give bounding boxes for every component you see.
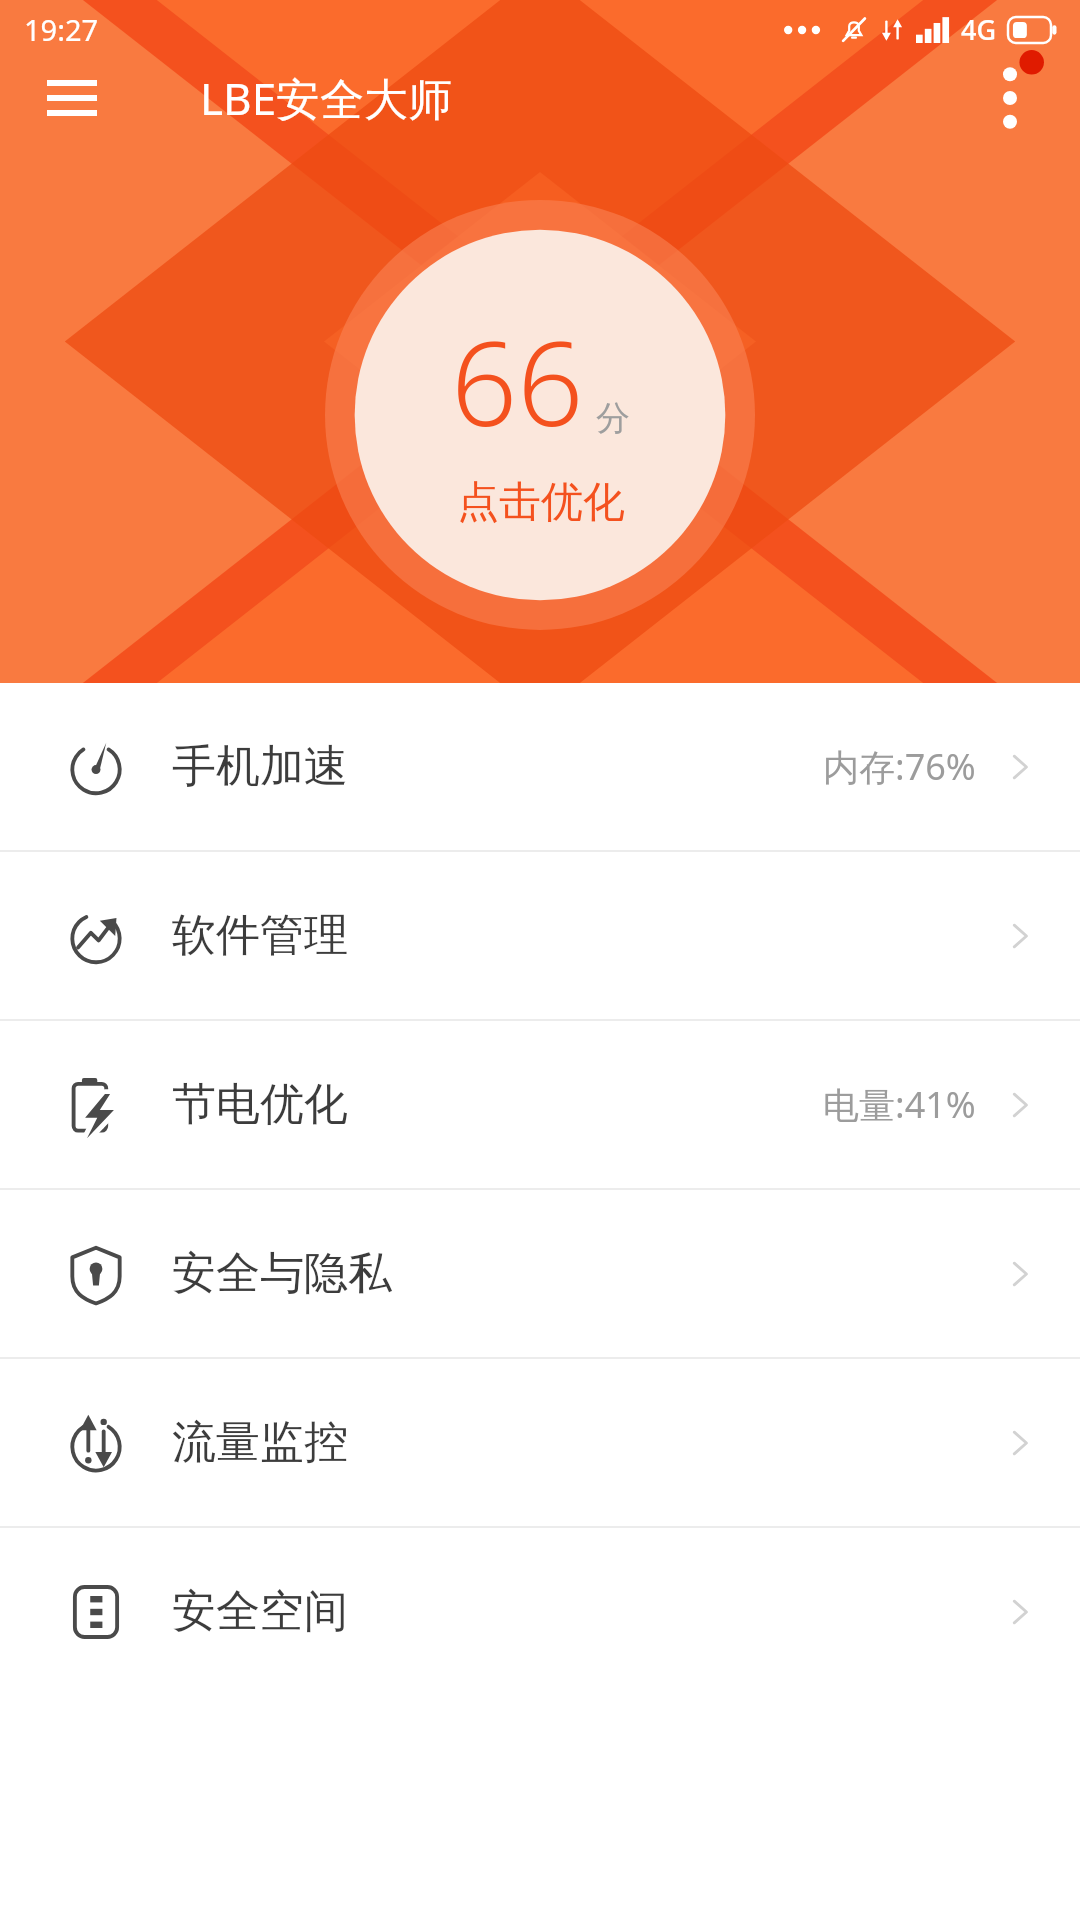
button[interactable]: 点击优化 66分: [325, 200, 755, 630]
staticText: 安全空间: [172, 1584, 348, 1639]
staticText: 安全与隐私: [172, 1246, 392, 1301]
staticText: 19:27: [24, 10, 99, 49]
staticText: 电量:41%: [823, 1080, 976, 1129]
button[interactable]: More options: [964, 52, 1056, 144]
staticText: 软件管理: [172, 908, 348, 963]
staticText: 流量监控: [172, 1415, 348, 1470]
button[interactable]: Menu: [30, 56, 114, 140]
button[interactable]: 手机加速: [0, 683, 1080, 850]
staticText: 66: [451, 302, 584, 460]
staticText: 内存:76%: [823, 742, 976, 791]
staticText: 分: [596, 397, 630, 440]
staticText: 节电优化: [172, 1077, 348, 1132]
button[interactable]: 流量监控: [0, 1359, 1080, 1526]
button[interactable]: 安全空间: [0, 1528, 1080, 1695]
staticText: 点击优化: [457, 476, 625, 529]
staticText: 手机加速: [172, 739, 348, 794]
button[interactable]: 节电优化: [0, 1021, 1080, 1188]
staticText: LBE安全大师: [200, 68, 453, 128]
staticText: 4G: [961, 11, 997, 48]
button[interactable]: 安全与隐私: [0, 1190, 1080, 1357]
button[interactable]: 软件管理: [0, 852, 1080, 1019]
